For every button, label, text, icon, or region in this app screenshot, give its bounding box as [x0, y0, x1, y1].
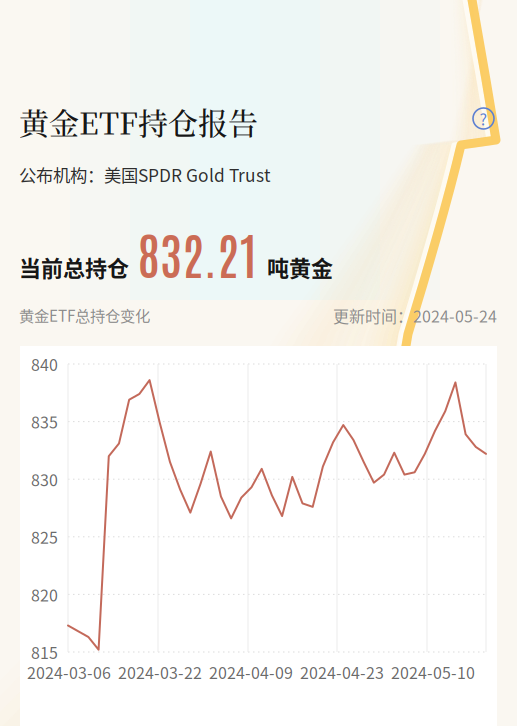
- staticText: 835: [31, 410, 58, 433]
- staticText: 2024-04-23: [300, 660, 384, 684]
- staticText: 830: [31, 468, 58, 491]
- staticText: 2024-03-22: [118, 660, 202, 684]
- staticText: 825: [31, 525, 58, 548]
- staticText: 2024-04-09: [209, 660, 293, 684]
- staticText: 832.21: [138, 221, 258, 285]
- staticText: ?: [479, 107, 487, 130]
- staticText: 820: [31, 583, 58, 606]
- staticText: 2024-05-10: [391, 660, 475, 684]
- staticText: 815: [31, 640, 58, 664]
- staticText: 更新时间：2024-05-24: [333, 304, 497, 327]
- button[interactable]: Help: [473, 108, 494, 129]
- staticText: 吨黄金: [267, 251, 333, 283]
- staticText: 黄金ETF总持仓变化: [19, 304, 150, 326]
- staticText: 当前总持仓: [19, 251, 129, 283]
- staticText: 黄金ETF持仓报告: [19, 100, 258, 143]
- staticText: 840: [31, 352, 58, 376]
- staticText: 公布机构：美国SPDR Gold Trust: [19, 162, 271, 187]
- staticText: 2024-03-06: [27, 660, 111, 684]
